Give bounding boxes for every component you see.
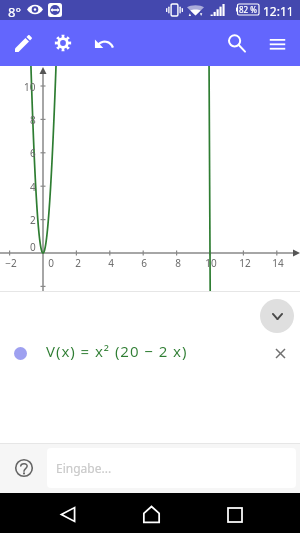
staticText: 10: [205, 256, 217, 270]
staticText: 8°: [8, 3, 22, 21]
button[interactable]: Home: [133, 496, 169, 532]
staticText: 8: [175, 256, 181, 270]
staticText: 12:11: [263, 3, 294, 19]
button[interactable]: Settings: [46, 20, 80, 66]
button[interactable]: Search: [219, 20, 253, 66]
button[interactable]: Collapse: [260, 299, 294, 333]
button[interactable]: Undo: [87, 20, 121, 66]
staticText: 0: [30, 240, 36, 254]
staticText: 8: [30, 113, 36, 127]
staticText: 6: [141, 256, 147, 270]
button[interactable]: V(x) = x² (20 − 2 x): [0, 333, 300, 375]
staticText: 4: [30, 180, 36, 194]
staticText: 12: [239, 256, 251, 270]
button[interactable]: Edit: [6, 20, 40, 66]
staticText: 2: [30, 213, 36, 227]
staticText: 14: [272, 256, 284, 270]
button[interactable]: Menu: [260, 20, 294, 66]
staticText: 10: [24, 80, 36, 94]
staticText: 4: [108, 256, 114, 270]
staticText: 6: [30, 146, 36, 160]
button[interactable]: Help: [8, 452, 39, 483]
button[interactable]: Recents: [217, 497, 253, 533]
staticText: V(x) = x² (20 − 2 x): [46, 341, 188, 361]
staticText: 2: [75, 256, 81, 270]
button[interactable]: Back: [50, 496, 86, 532]
button[interactable]: Eingabe...: [47, 448, 296, 488]
staticText: 82 %: [239, 4, 257, 15]
staticText: 0: [48, 256, 54, 270]
staticText: −2: [5, 256, 17, 270]
staticText: Eingabe...: [56, 460, 112, 476]
button[interactable]: Delete: [269, 342, 291, 364]
